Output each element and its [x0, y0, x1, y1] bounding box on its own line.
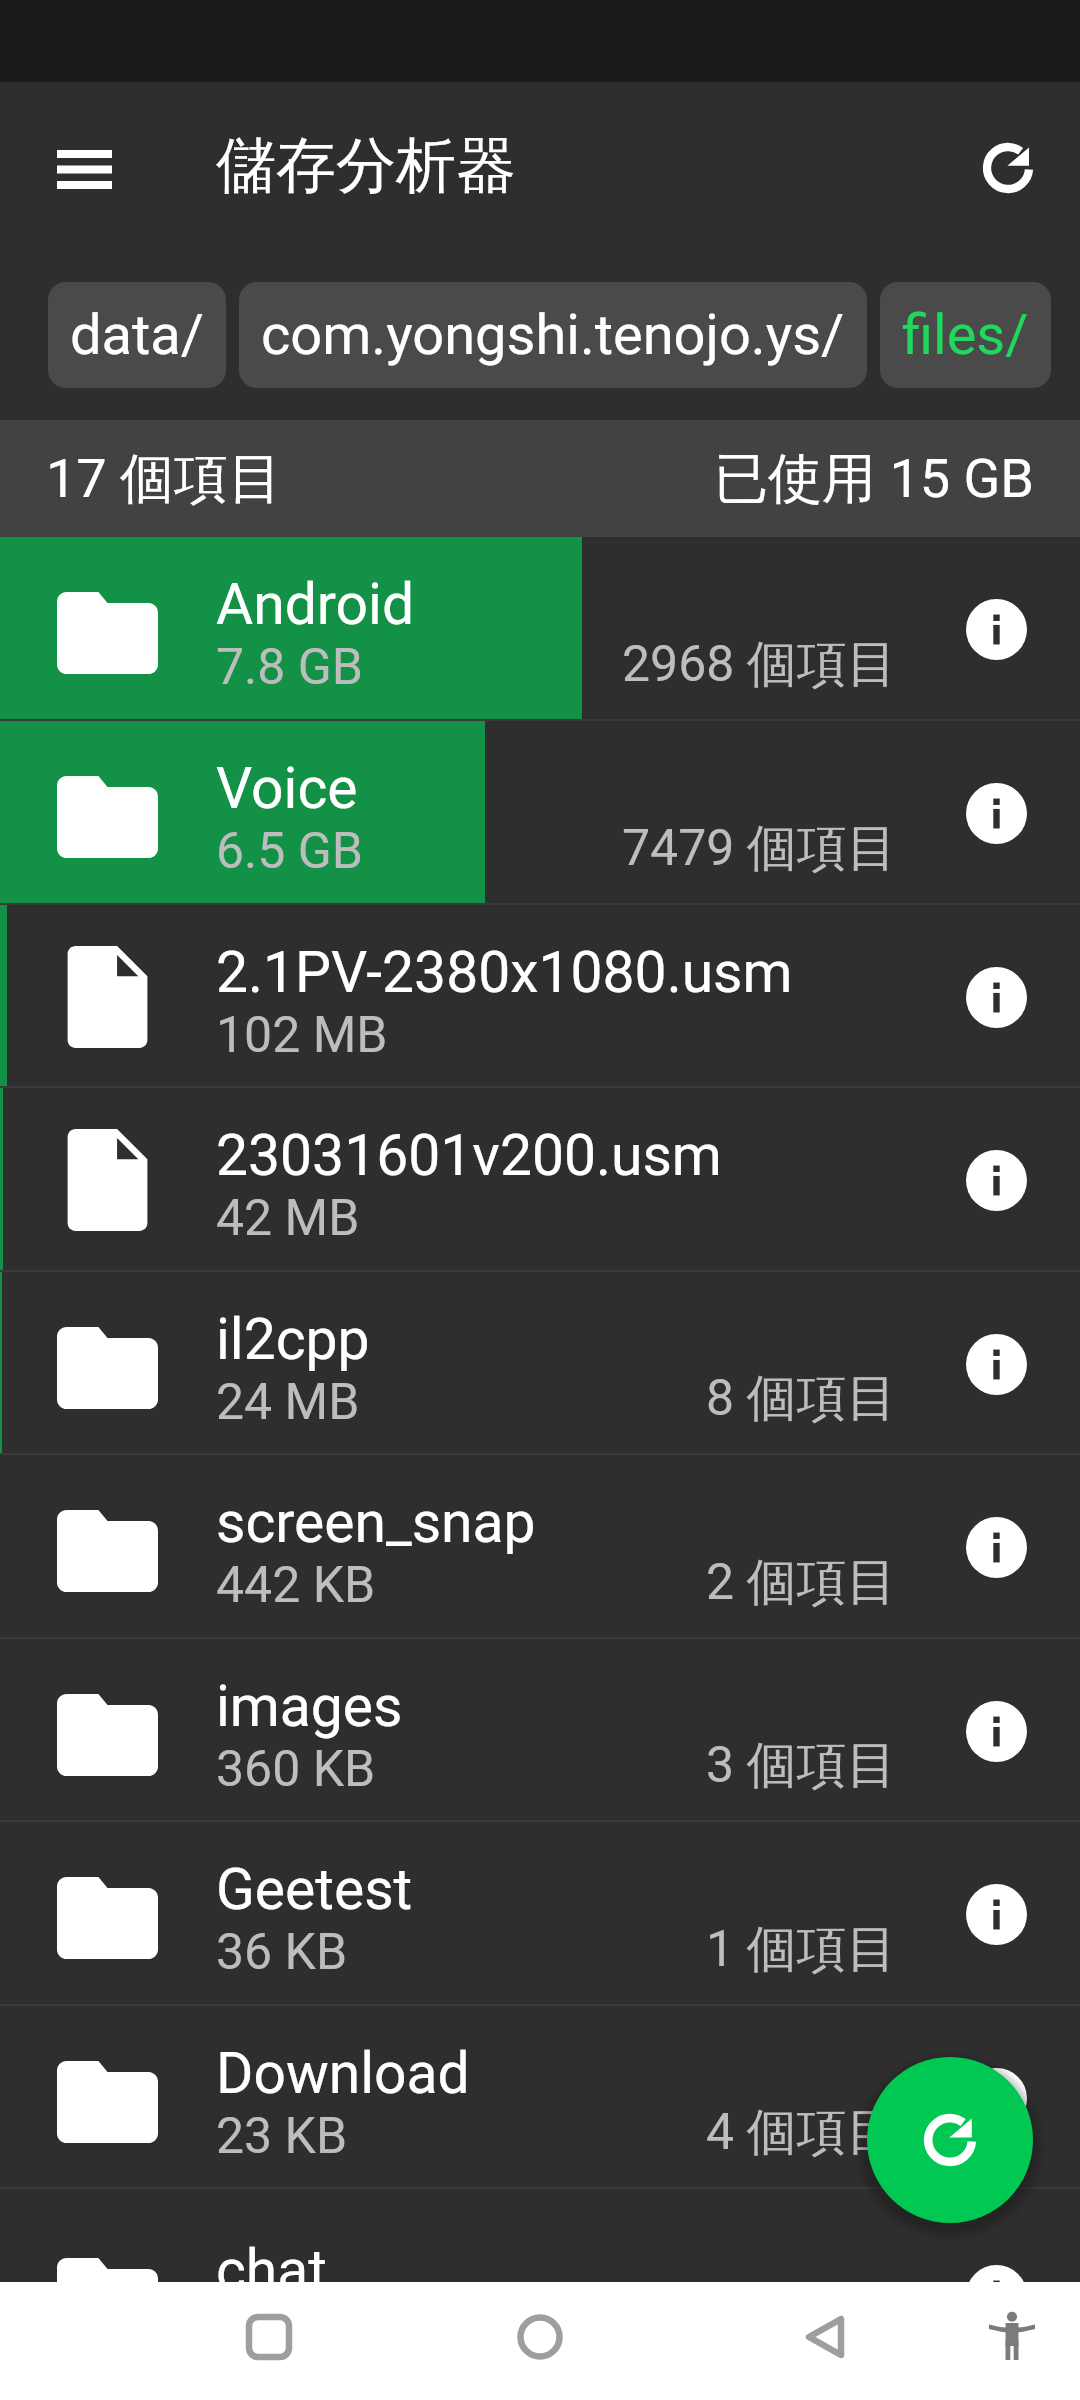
staticText: 17 個項目 — [46, 445, 283, 513]
staticText: Android — [216, 571, 415, 638]
staticText: 儲存分析器 — [216, 128, 516, 204]
button[interactable]: File info — [946, 947, 1046, 1047]
button[interactable]: data/ — [48, 282, 226, 388]
staticText: 4 個項目 — [706, 2101, 897, 2164]
staticText: il2cpp — [216, 1306, 370, 1373]
button[interactable]: images — [0, 1639, 1080, 1822]
staticText: images — [216, 1673, 403, 1740]
staticText: 6.5 GB — [216, 822, 363, 881]
staticText: 24 MB — [216, 1373, 360, 1432]
staticText: 8 個項目 — [706, 1367, 897, 1430]
staticText: 360 KB — [216, 1740, 376, 1799]
button[interactable]: Refresh — [951, 111, 1065, 225]
button[interactable]: File info — [946, 2245, 1046, 2345]
button[interactable]: Accessibility — [957, 2276, 1067, 2394]
button[interactable]: File info — [946, 1681, 1046, 1781]
staticText: data/ — [70, 302, 204, 368]
staticText: screen_snap — [216, 1489, 536, 1556]
staticText: 2 個項目 — [706, 1551, 897, 1614]
button[interactable]: il2cpp — [0, 1272, 1080, 1455]
button[interactable]: File info — [946, 1130, 1046, 1230]
staticText: 3 個項目 — [706, 1734, 897, 1797]
staticText: 23031601v200.usm — [216, 1122, 722, 1189]
staticText: Voice — [216, 755, 358, 822]
staticText: 23 KB — [216, 2107, 348, 2166]
staticText: files/ — [902, 302, 1029, 368]
button[interactable]: Download — [0, 2006, 1080, 2189]
button[interactable]: File info — [946, 1497, 1046, 1597]
button[interactable]: File info — [946, 1314, 1046, 1414]
staticText: com.yongshi.tenojo.ys/ — [261, 302, 845, 368]
button[interactable]: 23031601v200.usm — [0, 1088, 1080, 1272]
staticText: 442 KB — [216, 1556, 376, 1615]
staticText: 36 KB — [216, 1923, 348, 1982]
button[interactable]: Home — [480, 2278, 600, 2396]
staticText: 已使用 15 GB — [714, 445, 1034, 513]
staticText: 2968 個項目 — [622, 633, 897, 696]
staticText: 2.1PV-2380x1080.usm — [216, 939, 793, 1006]
staticText: 7479 個項目 — [622, 817, 897, 880]
staticText: 42 MB — [216, 1189, 360, 1248]
button[interactable]: File info — [946, 1864, 1046, 1964]
button[interactable]: Rescan storage — [867, 2057, 1033, 2223]
staticText: 1 個項目 — [706, 1918, 897, 1981]
button[interactable]: screen_snap — [0, 1455, 1080, 1639]
button[interactable]: chat — [0, 2189, 1080, 2400]
staticText: chat — [216, 2237, 327, 2304]
staticText: Geetest — [216, 1856, 413, 1923]
button[interactable]: Android — [0, 537, 1080, 721]
staticText: Download — [216, 2040, 470, 2107]
staticText: 7.8 GB — [216, 638, 363, 697]
staticText: 102 MB — [216, 1006, 388, 1065]
button[interactable]: Back — [765, 2278, 885, 2396]
button[interactable]: files/ — [880, 282, 1051, 388]
button[interactable]: File info — [946, 2048, 1046, 2148]
button[interactable]: Recent apps — [209, 2278, 329, 2396]
button[interactable]: Geetest — [0, 1822, 1080, 2006]
button[interactable]: com.yongshi.tenojo.ys/ — [239, 282, 867, 388]
button[interactable]: File info — [946, 579, 1046, 679]
button[interactable]: 2.1PV-2380x1080.usm — [0, 905, 1080, 1088]
button[interactable]: Voice — [0, 721, 1080, 905]
button[interactable]: Open navigation menu — [27, 112, 141, 226]
button[interactable]: File info — [946, 763, 1046, 863]
